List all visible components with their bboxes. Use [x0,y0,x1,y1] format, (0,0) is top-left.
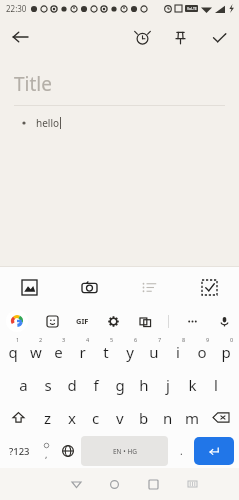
staticText: b [139,408,149,428]
button[interactable]: Shift [1,401,36,434]
staticText: z [44,408,52,428]
staticText: hello [36,116,60,130]
staticText: Title [14,71,52,97]
staticText: 8 [182,336,186,343]
button[interactable]: . [170,436,192,466]
staticText: 9 [206,336,210,343]
button[interactable]: x [60,401,84,434]
staticText: j [166,375,170,395]
staticText: 6 [134,336,138,343]
staticText: 3 [62,336,66,343]
button[interactable]: f [84,368,108,401]
button[interactable]: k [180,368,204,401]
staticText: 2 [39,336,43,343]
button[interactable]: Recents [134,468,173,500]
staticText: ?123 [9,445,30,458]
staticText: 5 [110,336,114,343]
button[interactable]: Enter [194,437,234,465]
staticText: x [68,408,76,428]
button[interactable]: g [108,368,132,401]
button[interactable]: Back [57,468,95,500]
staticText: m [185,408,200,428]
button[interactable]: b [132,401,156,434]
staticText: g [115,375,125,395]
button[interactable]: ?123 [3,436,35,466]
button[interactable]: p [214,335,238,368]
staticText: u [149,342,159,362]
staticText: 0 [230,336,234,343]
button[interactable]: o [190,335,214,368]
button[interactable]: n [156,401,180,434]
button[interactable]: Google [6,310,28,332]
button[interactable]: Scan [179,267,239,307]
button[interactable]: h [132,368,156,401]
button[interactable]: More [183,312,201,330]
staticText: r [79,342,86,362]
button[interactable]: Settings [104,312,122,330]
button[interactable]: r [70,335,94,368]
staticText: . [180,444,183,458]
staticText: y [126,342,134,362]
staticText: s [44,375,52,395]
button[interactable]: j [156,368,180,401]
button[interactable]: i [166,335,190,368]
button[interactable]: s [36,368,60,401]
staticText: v [116,408,124,428]
staticText: c [92,408,100,428]
button[interactable]: l [204,368,228,401]
button[interactable]: Home [95,468,134,500]
staticText: w [30,342,42,362]
button[interactable]: z [36,401,60,434]
staticText: VoLTE [187,6,197,11]
staticText: GIF [76,316,89,326]
staticText: n [163,408,173,428]
button[interactable]: Translate [136,312,154,330]
staticText: q [8,342,18,362]
staticText: 4 [86,336,90,343]
button[interactable]: y [118,335,142,368]
staticText: 22:30 [6,3,27,14]
button[interactable]: t [94,335,118,368]
button[interactable]: Back [0,17,40,57]
button[interactable]: Emoji [35,436,57,466]
button[interactable]: m [180,401,204,434]
button[interactable]: Backspace [204,401,238,434]
button[interactable]: d [60,368,84,401]
button[interactable]: Stickers [43,312,61,330]
button[interactable]: Reminder [123,18,161,56]
staticText: 1 [16,336,20,343]
button[interactable]: w [24,335,47,368]
button[interactable]: q [1,335,24,368]
staticText: l [214,375,218,395]
button[interactable]: e [47,335,70,368]
staticText: i [176,342,180,362]
staticText: h [139,375,149,395]
staticText: e [54,342,63,362]
button[interactable]: u [142,335,166,368]
staticText: f [93,375,99,395]
staticText: 7 [158,336,162,343]
button[interactable]: Voice input [215,312,233,330]
staticText: EN • HG [113,447,137,456]
button[interactable]: v [108,401,132,434]
staticText: t [103,342,109,362]
staticText: o [197,342,207,362]
staticText: , [45,448,48,460]
button[interactable]: c [84,401,108,434]
staticText: k [188,375,197,395]
button[interactable]: Change language [57,436,79,466]
button[interactable]: Keyboard indicator [173,468,212,500]
button[interactable]: a [11,368,36,401]
button[interactable]: EN • HG [81,436,168,466]
button[interactable]: GIF [76,316,89,326]
staticText: p [221,342,231,362]
button[interactable]: Take photo [59,267,119,307]
button[interactable]: Pin [161,18,199,56]
button[interactable]: Done [199,17,239,57]
button[interactable]: Insert image [0,267,59,307]
staticText: d [67,375,77,395]
button[interactable]: Checklist [119,267,179,307]
staticText: a [19,375,28,395]
